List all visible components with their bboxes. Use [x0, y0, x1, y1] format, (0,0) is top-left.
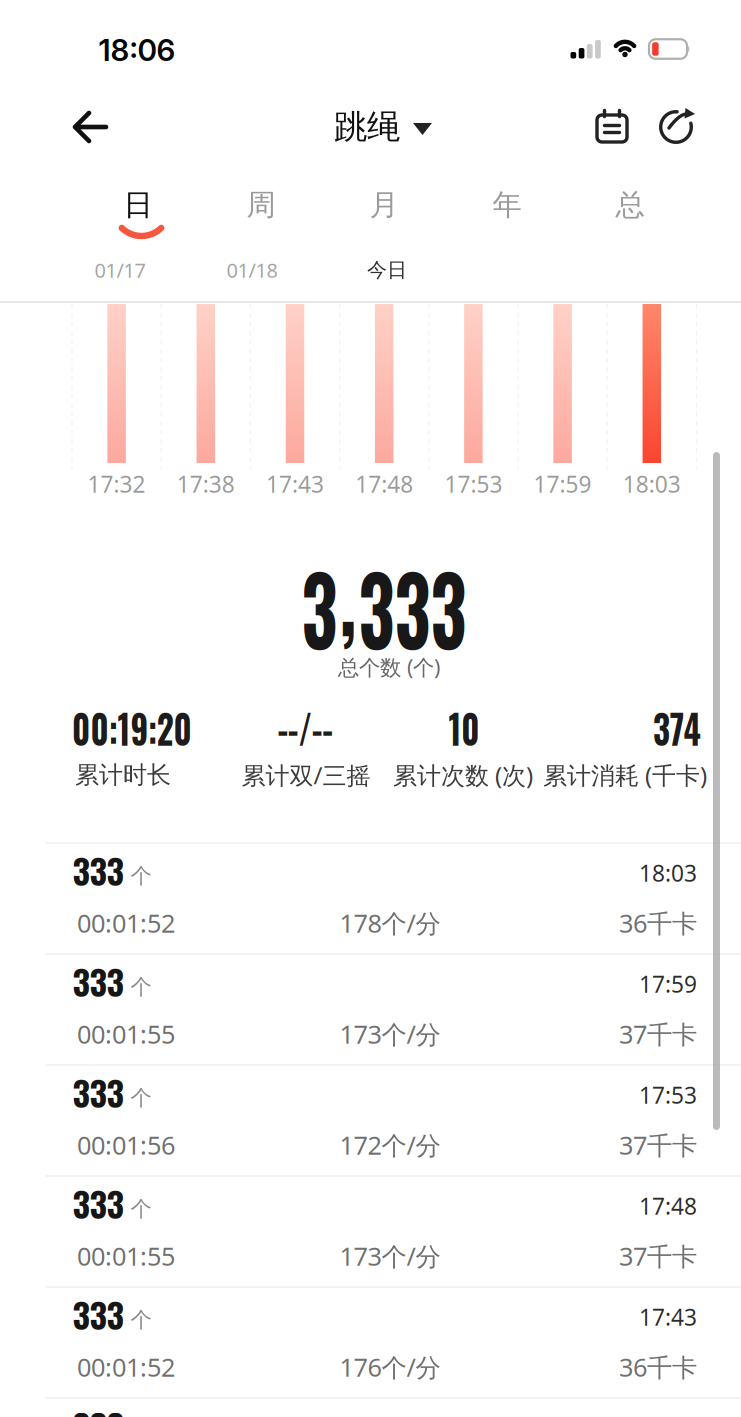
staticText: 01/18	[226, 257, 277, 283]
staticText: 17:59	[534, 469, 592, 499]
button[interactable]: 跳绳	[334, 106, 432, 147]
button[interactable]: 333	[0, 1065, 741, 1176]
staticText: 17:53	[639, 1080, 697, 1110]
staticText: 172个/分	[339, 1128, 440, 1162]
button[interactable]: 今日	[361, 252, 413, 288]
staticText: 17:59	[639, 969, 697, 999]
staticText: 17:38	[177, 469, 235, 499]
staticText: 178个/分	[339, 906, 440, 940]
staticText: 00:01:56	[77, 1128, 175, 1162]
staticText: 374	[647, 696, 707, 758]
staticText: 37千卡	[619, 1017, 697, 1051]
staticText: 333	[72, 1400, 123, 1417]
staticText: 37千卡	[619, 1239, 697, 1273]
staticText: --/--	[270, 696, 339, 758]
staticText: 00:01:55	[77, 1239, 175, 1273]
staticText: 3	[274, 538, 322, 676]
staticText: 今日	[367, 258, 407, 282]
staticText: 18:03	[623, 469, 681, 499]
staticText: 月	[369, 187, 398, 223]
staticText: 个	[130, 1196, 151, 1222]
staticText: 36千卡	[619, 1350, 697, 1384]
staticText: 总	[615, 187, 644, 223]
staticText: 17:48	[639, 1191, 697, 1221]
staticText: 01/17	[94, 257, 145, 283]
staticText: 个	[130, 974, 151, 1000]
staticText: 10	[444, 696, 483, 758]
staticText: 333	[72, 1178, 123, 1229]
staticText: 17:53	[444, 469, 502, 499]
staticText: ,	[325, 525, 347, 663]
button[interactable]: 年	[474, 179, 539, 231]
staticText: 333	[72, 1289, 123, 1340]
staticText: 周	[246, 187, 275, 223]
staticText: 累计双/三摇	[241, 759, 370, 791]
staticText: 17:48	[355, 469, 413, 499]
button[interactable]: 周	[228, 179, 293, 231]
button[interactable]	[589, 102, 635, 150]
staticText: 17:43	[266, 469, 324, 499]
staticText: 176个/分	[339, 1350, 440, 1384]
staticText: 36千卡	[619, 906, 697, 940]
staticText: 333	[72, 956, 123, 1007]
button[interactable]: 333	[0, 843, 741, 954]
button[interactable]: 333	[0, 1398, 741, 1417]
staticText: 37千卡	[619, 1128, 697, 1162]
button[interactable]: 日	[105, 179, 170, 231]
staticText: 个	[130, 1307, 151, 1333]
staticText: 日	[123, 187, 152, 223]
button[interactable]: 333	[0, 954, 741, 1065]
button[interactable]: 01/17	[88, 251, 151, 289]
staticText: 00:01:52	[77, 906, 175, 940]
button[interactable]: 01/18	[220, 251, 283, 289]
staticText: 累计消耗 (千卡)	[543, 759, 707, 791]
staticText: 333	[350, 538, 494, 676]
button[interactable]: 月	[351, 179, 416, 231]
staticText: 173个/分	[339, 1239, 440, 1273]
staticText: 18:06	[98, 32, 175, 68]
staticText: 个	[130, 1085, 151, 1111]
staticText: 个	[130, 863, 151, 889]
button[interactable]: 总	[597, 179, 662, 231]
staticText: 00:01:55	[77, 1017, 175, 1051]
button[interactable]	[60, 99, 120, 155]
staticText: 累计次数 (次)	[393, 759, 533, 791]
staticText: 18:03	[639, 858, 697, 888]
staticText: 年	[492, 187, 521, 223]
staticText: 173个/分	[339, 1017, 440, 1051]
button[interactable]: 333	[0, 1287, 741, 1398]
staticText: 333	[72, 845, 123, 896]
staticText: 00:01:52	[77, 1350, 175, 1384]
staticText: 累计时长	[75, 760, 171, 790]
button[interactable]: 333	[0, 1176, 741, 1287]
staticText: 跳绳	[334, 106, 400, 147]
button[interactable]	[651, 100, 705, 154]
staticText: 333	[72, 1067, 123, 1118]
staticText: 17:43	[639, 1302, 697, 1332]
staticText: 00:19:20	[57, 696, 207, 758]
staticText: 17:32	[88, 469, 146, 499]
staticText: 总个数 (个)	[338, 653, 440, 681]
